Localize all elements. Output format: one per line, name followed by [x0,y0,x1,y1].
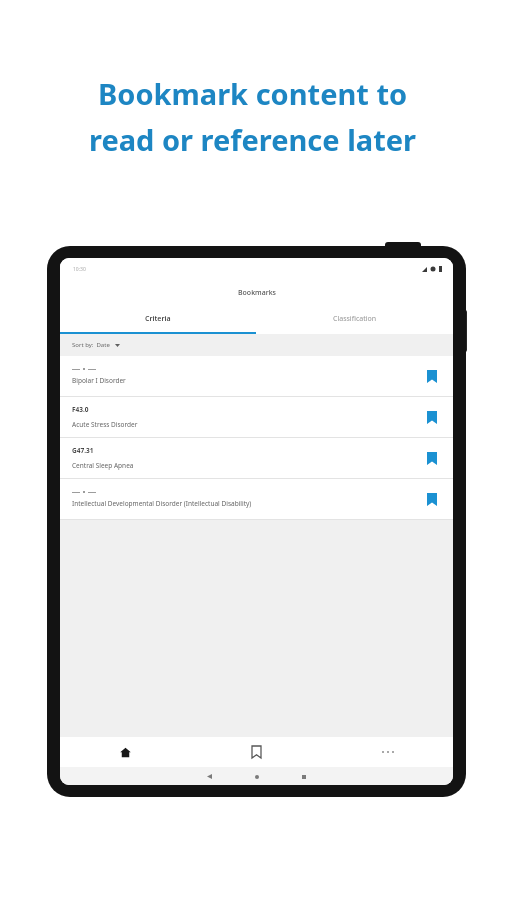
button[interactable]: Remove bookmark [422,366,442,386]
button[interactable]: More options [322,737,453,767]
staticText: 10:30 [73,266,86,273]
button[interactable]: Sort by: Date [60,334,453,356]
staticText: Intellectual Developmental Disorder (Int… [72,499,252,508]
button[interactable]: Criteria [60,305,256,332]
staticText: Criteria [145,314,171,324]
button[interactable]: F43.0 [60,397,453,437]
staticText: F43.0 [72,405,89,414]
button[interactable]: Classification [256,305,453,332]
staticText: read or reference later [89,120,417,159]
button[interactable]: Bookmarks [191,737,322,767]
button[interactable]: Remove bookmark [422,407,442,427]
button[interactable]: Remove bookmark [422,448,442,468]
button[interactable]: Bipolar I Disorder [60,356,453,396]
staticText: Sort by: Date [72,341,110,349]
staticText: Classification [333,314,377,324]
staticText: G47.31 [72,446,94,455]
staticText: Central Sleep Apnea [72,461,134,470]
staticText: Acute Stress Disorder [72,420,138,429]
staticText: Bipolar I Disorder [72,376,126,385]
button[interactable]: Home [60,737,191,767]
staticText: Bookmark content to [98,74,408,113]
button[interactable]: G47.31 [60,438,453,478]
button[interactable]: Remove bookmark [422,489,442,509]
staticText: Bookmarks [238,288,276,298]
button[interactable]: Intellectual Developmental Disorder (Int… [60,479,453,519]
